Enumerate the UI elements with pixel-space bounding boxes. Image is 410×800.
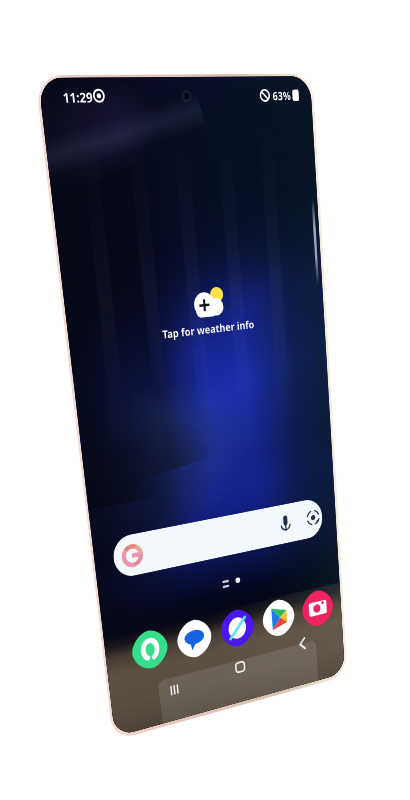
staticText: Tap for weather info [146, 315, 269, 346]
button[interactable]: Home [228, 652, 252, 682]
button[interactable]: Camera [301, 587, 334, 630]
staticText: 11:29 [62, 88, 96, 107]
button[interactable]: Messages [176, 616, 213, 661]
button[interactable]: Back [291, 629, 314, 658]
button[interactable]: Play Store [261, 596, 295, 640]
button[interactable]: Phone [130, 627, 169, 672]
button[interactable]: Internet [219, 606, 255, 650]
button[interactable]: Recents [161, 674, 187, 705]
button[interactable]: Google search [111, 497, 323, 579]
staticText: 63% [272, 88, 292, 103]
button[interactable]: Tap for weather info [180, 285, 235, 326]
